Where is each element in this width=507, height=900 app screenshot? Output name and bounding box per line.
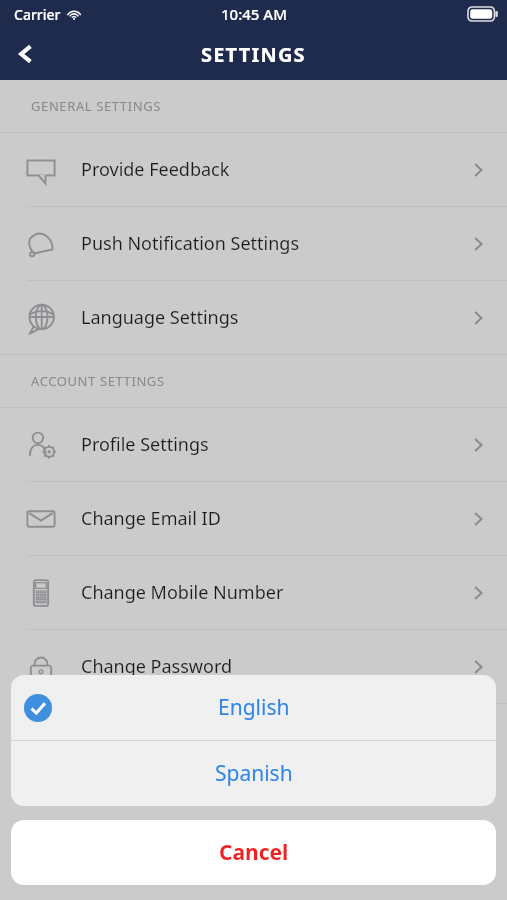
staticText: Language Settings [81,305,449,330]
staticText: SETTINGS [201,41,306,68]
button[interactable]: Change Mobile Number [0,556,507,629]
staticText: Carrier [14,5,61,24]
staticText: Change Email ID [81,506,449,531]
button[interactable]: Back [0,28,52,80]
button[interactable]: Provide Feedback [0,133,507,206]
staticText: GENERAL SETTINGS [31,97,161,115]
button[interactable]: Push Notification Settings [0,207,507,280]
button[interactable]: Cancel [11,820,496,885]
button[interactable]: Change Password [0,630,507,703]
staticText: ACCOUNT SETTINGS [31,372,165,390]
staticText: Provide Feedback [81,157,449,182]
staticText: Profile Settings [81,432,449,457]
button[interactable]: Change Email ID [0,482,507,555]
staticText: Push Notification Settings [81,231,449,256]
staticText: English [218,693,290,722]
staticText: Change Password [81,654,449,679]
staticText: Cancel [219,838,289,867]
staticText: 10:45 AM [221,4,287,24]
staticText: Change Mobile Number [81,580,449,605]
button[interactable]: English [11,675,496,740]
button[interactable]: Profile Settings [0,408,507,481]
button[interactable]: Spanish [11,741,496,806]
button[interactable]: Language Settings [0,281,507,354]
staticText: Spanish [215,759,293,788]
